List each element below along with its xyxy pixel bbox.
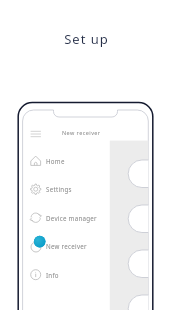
button[interactable]: Open navigation menu: [26, 124, 40, 142]
staticText: Device manager: [46, 214, 97, 222]
staticText: New receiver: [46, 242, 87, 250]
button[interactable]: [23, 180, 109, 198]
staticText: Settings: [46, 185, 72, 193]
button[interactable]: [23, 266, 109, 284]
button[interactable]: [23, 209, 109, 227]
button[interactable]: [23, 237, 109, 255]
staticText: Set up: [0, 30, 173, 48]
staticText: Info: [46, 271, 59, 279]
button[interactable]: [23, 152, 109, 170]
staticText: Home: [46, 157, 65, 165]
staticText: New receiver: [62, 129, 101, 136]
